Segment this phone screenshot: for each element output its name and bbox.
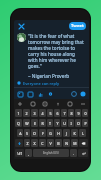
staticText: 2	[25, 111, 28, 116]
button[interactable]: Add location	[47, 91, 53, 97]
button[interactable]: 6	[54, 109, 60, 117]
staticText: 0	[84, 111, 87, 116]
button[interactable]: N	[63, 139, 70, 147]
button[interactable]: V	[47, 139, 54, 147]
button[interactable]: 7	[61, 109, 67, 117]
staticText: T	[49, 121, 51, 126]
staticText: ~ Nigerian Proverb	[28, 73, 70, 79]
button[interactable]: Clipboard	[67, 101, 73, 107]
button[interactable]: F	[39, 129, 46, 137]
button[interactable]: Character count	[71, 91, 77, 97]
button[interactable]: X	[31, 139, 38, 147]
button[interactable]: L	[79, 129, 86, 137]
button[interactable]: ,	[25, 149, 32, 157]
staticText: 7	[63, 111, 66, 116]
button[interactable]: 1	[15, 109, 22, 117]
button[interactable]: C	[39, 139, 46, 147]
button[interactable]: Settings	[17, 101, 23, 107]
button[interactable]: 4	[39, 109, 46, 117]
button[interactable]: T	[47, 119, 53, 127]
staticText: C	[41, 141, 44, 146]
staticText: F	[42, 131, 44, 136]
button[interactable]: I	[68, 119, 74, 127]
button[interactable]: Add GIF	[27, 91, 33, 97]
staticText: ,	[28, 151, 29, 156]
staticText: 6	[56, 111, 59, 116]
button[interactable]: K	[71, 129, 78, 137]
button[interactable]: O	[75, 119, 81, 127]
staticText: Y	[56, 121, 59, 126]
button[interactable]: D	[31, 129, 38, 137]
button[interactable]: Space	[33, 149, 69, 157]
button[interactable]: U	[61, 119, 67, 127]
button[interactable]: Y	[54, 119, 60, 127]
button[interactable]: .	[70, 149, 77, 157]
button[interactable]: Add tweet	[80, 91, 86, 97]
staticText: 8	[70, 111, 73, 116]
staticText: H	[57, 131, 60, 136]
staticText: R	[41, 121, 44, 126]
staticText: !#1	[17, 151, 23, 156]
staticText: I	[70, 121, 72, 126]
button[interactable]: G	[47, 129, 54, 137]
button[interactable]: W	[23, 119, 30, 127]
staticText: N	[65, 141, 68, 146]
button[interactable]: Profile photo	[17, 33, 26, 42]
staticText: A	[19, 131, 22, 136]
button[interactable]: A	[17, 129, 23, 137]
staticText: X	[33, 141, 36, 146]
button[interactable]: 3	[31, 109, 38, 117]
button[interactable]: S	[24, 129, 30, 137]
staticText: W	[25, 121, 29, 126]
button[interactable]: E	[31, 119, 38, 127]
staticText: U	[63, 121, 66, 126]
button[interactable]: 0	[82, 109, 88, 117]
button[interactable]: Everyone can reply	[17, 79, 89, 87]
button[interactable]: !#1	[15, 149, 24, 157]
button[interactable]: 8	[68, 109, 74, 117]
button[interactable]: B	[55, 139, 62, 147]
staticText: K	[73, 131, 76, 136]
staticText: L	[82, 131, 84, 136]
button[interactable]: 9	[75, 109, 81, 117]
staticText: D	[33, 131, 36, 136]
button[interactable]: 2	[23, 109, 30, 117]
button[interactable]: Tweet	[69, 22, 86, 30]
staticText: 1	[17, 111, 20, 116]
button[interactable]: J	[63, 129, 70, 137]
staticText: Everyone can reply	[23, 81, 60, 86]
button[interactable]: GIF keyboard	[42, 101, 48, 107]
button[interactable]: Enter	[78, 149, 88, 157]
staticText: P	[84, 121, 87, 126]
staticText: 3	[33, 111, 36, 116]
staticText: J	[66, 131, 67, 136]
button[interactable]: R	[39, 119, 46, 127]
button[interactable]: H	[55, 129, 62, 137]
button[interactable]: Shift	[15, 139, 23, 147]
button[interactable]: More options	[80, 101, 86, 107]
staticText: E	[34, 121, 36, 126]
button[interactable]: Backspace	[79, 139, 88, 147]
staticText: B	[57, 141, 60, 146]
staticText: .	[73, 151, 74, 156]
button[interactable]: Z	[24, 139, 30, 147]
staticText: 4	[41, 111, 44, 116]
staticText: Tweet	[71, 23, 84, 29]
button[interactable]: Q	[15, 119, 22, 127]
button[interactable]: 5	[47, 109, 53, 117]
button[interactable]: P	[82, 119, 88, 127]
staticText: 9	[77, 111, 80, 116]
button[interactable]: Close	[17, 22, 26, 31]
staticText: Z	[26, 141, 29, 146]
staticText: M	[73, 141, 77, 146]
button[interactable]: Stickers	[30, 101, 36, 107]
staticText: S	[26, 131, 28, 136]
staticText: English (US)	[43, 151, 59, 155]
button[interactable]: Voice input	[55, 101, 61, 107]
staticText: V	[49, 141, 52, 146]
staticText: "It is the fear of what tomorrow may bri…	[28, 33, 85, 69]
button[interactable]: Add photo	[17, 91, 23, 97]
button[interactable]: M	[71, 139, 78, 147]
button[interactable]: Add poll	[37, 91, 43, 97]
staticText: O	[77, 121, 80, 126]
